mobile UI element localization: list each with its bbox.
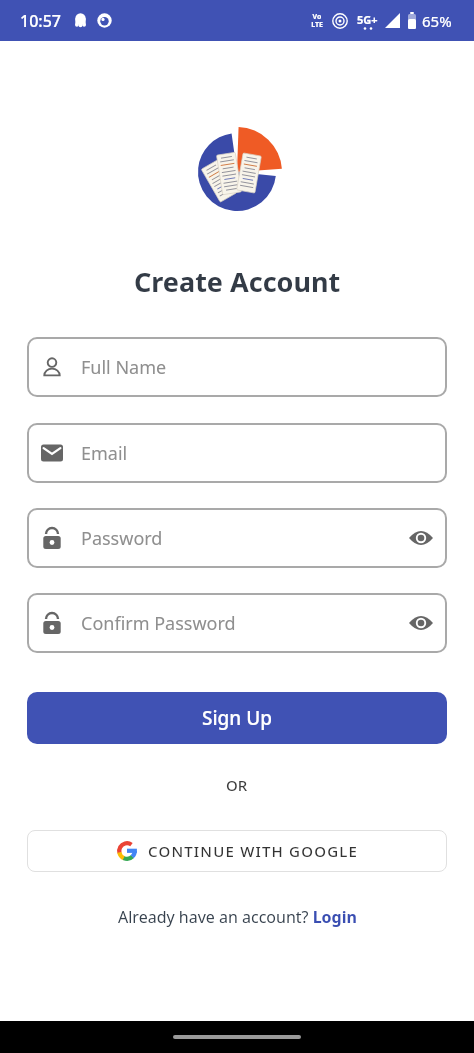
staticText: CONTINUE WITH GOOGLE — [148, 841, 359, 861]
staticText: Sign Up — [202, 705, 273, 731]
button[interactable]: Confirm Password — [27, 593, 447, 653]
button[interactable]: Password — [27, 508, 447, 568]
staticText: Full Name — [81, 355, 167, 380]
staticText: 5G+ — [357, 12, 378, 27]
staticText: OR — [226, 775, 248, 795]
staticText: Confirm Password — [81, 611, 236, 636]
button[interactable]: Full Name — [27, 337, 447, 397]
button[interactable]: CONTINUE WITH GOOGLE — [27, 830, 447, 872]
staticText: 10:57 — [20, 10, 61, 32]
staticText: Vo LTE — [311, 12, 323, 29]
staticText: Password — [81, 526, 163, 551]
staticText: Create Account — [134, 263, 341, 300]
button[interactable]: Already have an account? Login — [118, 906, 357, 928]
staticText: 65% — [422, 11, 452, 31]
button[interactable]: Email — [27, 423, 447, 483]
button[interactable]: Sign Up — [27, 692, 447, 744]
staticText: Email — [81, 441, 128, 466]
